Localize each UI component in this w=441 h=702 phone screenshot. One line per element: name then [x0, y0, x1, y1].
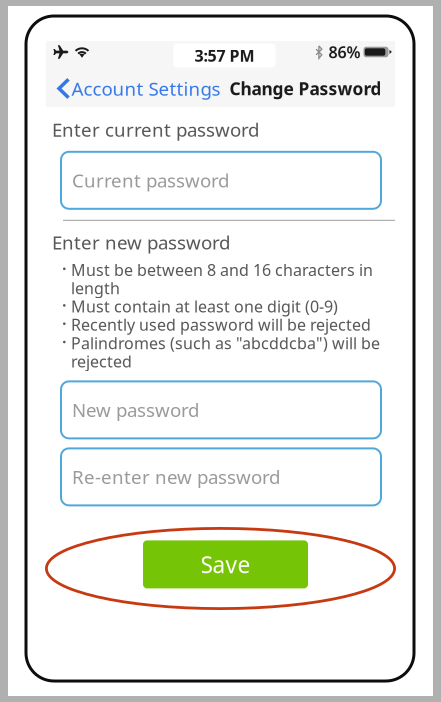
staticText: length — [71, 277, 120, 299]
staticText: Palindromes (such as "abcddcba") will be — [71, 332, 380, 353]
staticText: Must be between 8 and 16 characters in — [71, 259, 373, 280]
staticText: Enter current password — [52, 117, 259, 142]
button[interactable]: Save — [143, 540, 308, 588]
staticText: 3:57 PM — [194, 45, 254, 66]
staticText: Recently used password will be rejected — [71, 314, 371, 335]
staticText: Must contain at least one digit (0-9) — [71, 296, 338, 317]
staticText: rejected — [71, 351, 132, 372]
staticText: 86% — [328, 41, 360, 63]
button[interactable]: Account Settings — [46, 70, 223, 107]
staticText: Re-enter new password — [72, 464, 280, 489]
staticText: Enter new password — [52, 230, 230, 255]
staticText: New password — [72, 397, 199, 422]
staticText: Current password — [72, 168, 229, 193]
staticText: Save — [200, 549, 250, 579]
staticText: Change Password — [229, 77, 381, 100]
staticText: Account Settings — [71, 76, 220, 101]
